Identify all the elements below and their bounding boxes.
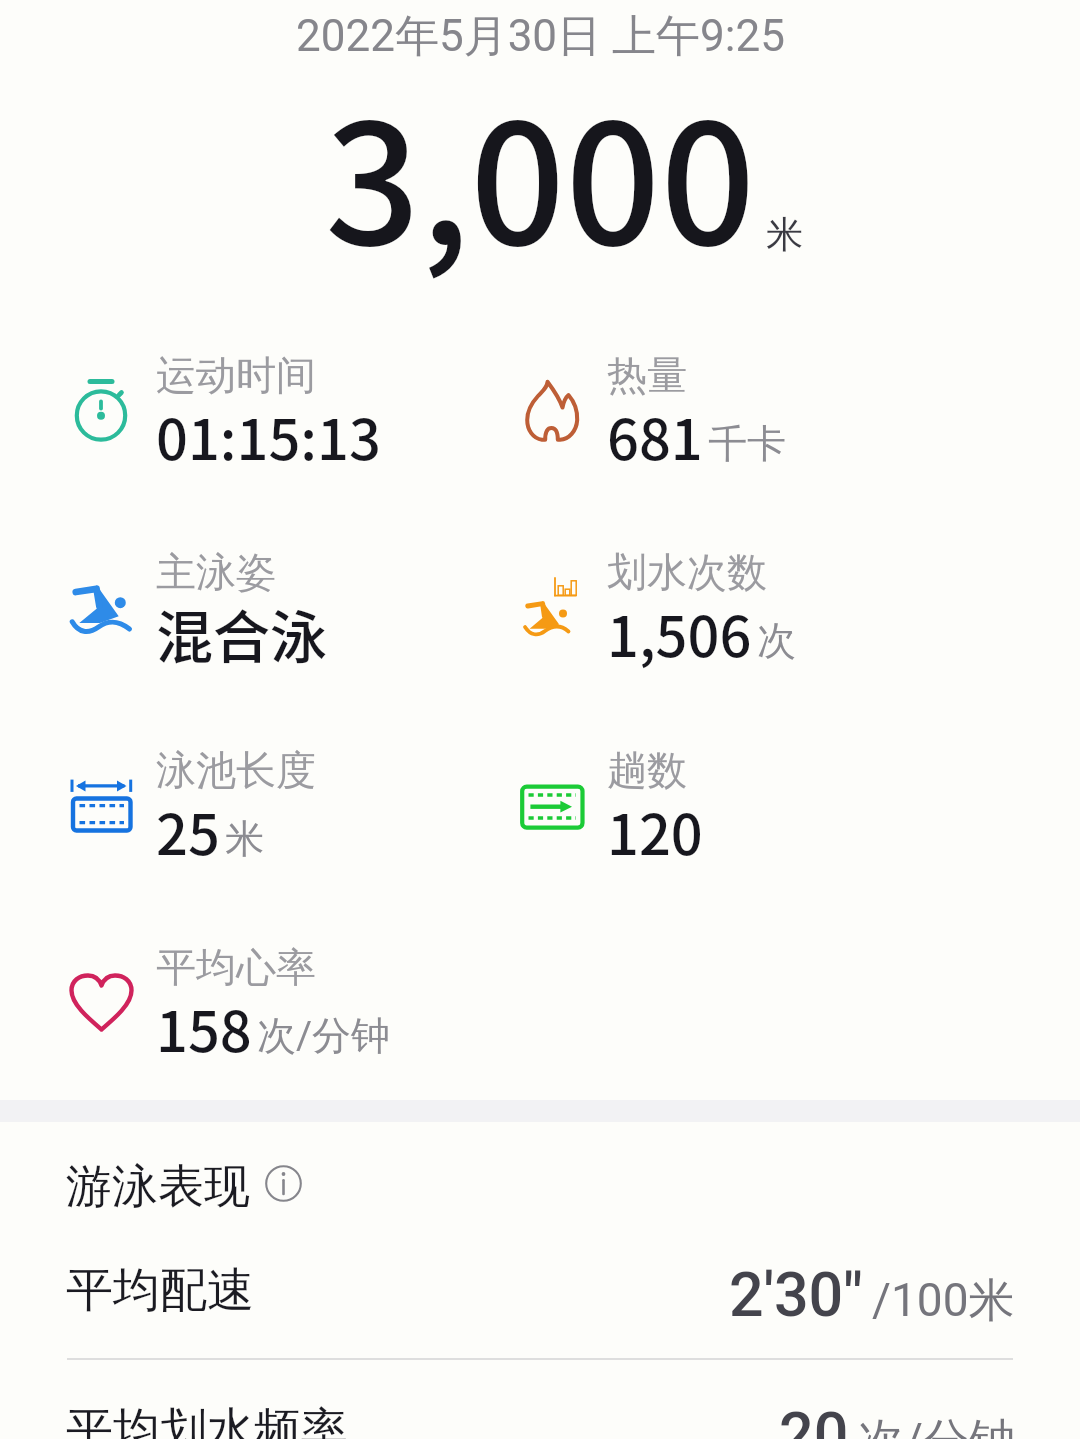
staticText: 米 xyxy=(225,814,264,863)
staticText: 游泳表现 xyxy=(66,1158,250,1216)
staticText: 01:15:13 xyxy=(156,395,381,476)
button[interactable]: Info xyxy=(264,1164,303,1203)
button[interactable] xyxy=(35,518,529,698)
staticText: 681 xyxy=(607,395,703,476)
staticText: /100米 xyxy=(872,1272,1015,1330)
staticText: 泳池长度 xyxy=(156,745,316,795)
staticText: 混合泳 xyxy=(156,592,327,675)
staticText: 2022年5月30日 上午9:25 xyxy=(296,9,785,64)
staticText: 次 xyxy=(757,616,796,665)
staticText: 划水次数 xyxy=(607,547,767,597)
button[interactable] xyxy=(486,716,980,896)
staticText: 热量 xyxy=(607,350,687,400)
staticText: 158 xyxy=(156,987,252,1068)
button[interactable] xyxy=(35,716,529,896)
staticText: 米 xyxy=(766,211,803,258)
staticText: 平均划水频率 xyxy=(66,1401,348,1439)
staticText: 120 xyxy=(607,790,703,871)
staticText: 主泳姿 xyxy=(156,547,276,597)
staticText: 次/分钟 xyxy=(257,1011,391,1060)
staticText: 3,000 xyxy=(325,51,756,293)
button[interactable] xyxy=(0,1235,1080,1335)
button[interactable] xyxy=(35,321,529,501)
button[interactable] xyxy=(35,913,529,1093)
button[interactable] xyxy=(0,1375,1080,1439)
staticText: 2'30" xyxy=(729,1259,863,1330)
staticText: 20 xyxy=(779,1399,849,1439)
staticText: 趟数 xyxy=(607,745,687,795)
staticText: 次/分钟 xyxy=(858,1412,1015,1439)
staticText: 平均心率 xyxy=(156,942,316,992)
staticText: 1,506 xyxy=(607,592,752,673)
button[interactable] xyxy=(486,518,980,698)
button[interactable] xyxy=(486,321,980,501)
staticText: 平均配速 xyxy=(66,1261,254,1320)
staticText: 千卡 xyxy=(708,419,786,468)
staticText: 25 xyxy=(156,790,220,871)
staticText: 运动时间 xyxy=(156,350,316,400)
